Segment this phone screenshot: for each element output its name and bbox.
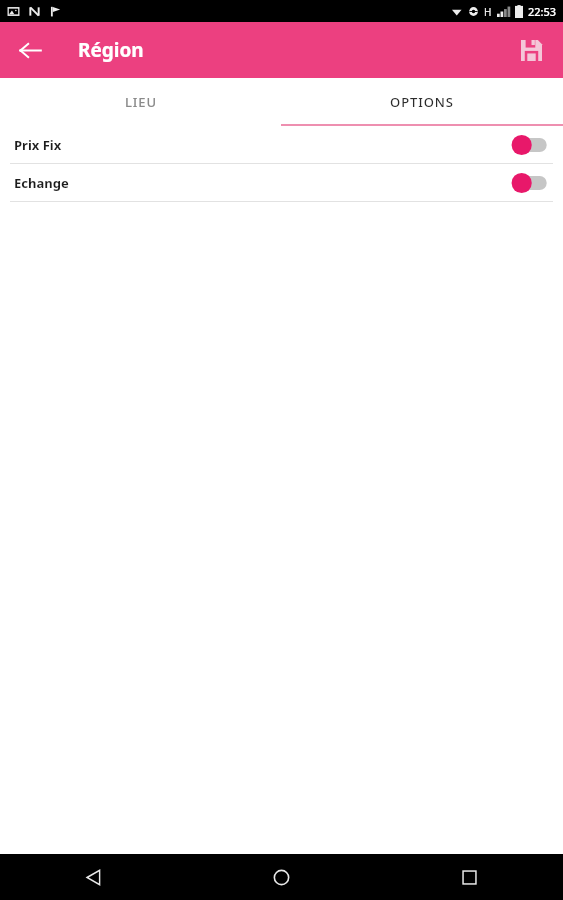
button[interactable]: Back (6, 26, 54, 74)
button[interactable]: LIEU (0, 78, 281, 126)
button[interactable]: Prix Fix (0, 126, 563, 163)
button[interactable]: Home (187, 854, 375, 900)
staticText: Région (78, 37, 144, 63)
staticText: LIEU (125, 93, 157, 111)
staticText: 22:53 (528, 4, 557, 19)
staticText: OPTIONS (390, 93, 454, 111)
staticText: Prix Fix (14, 136, 62, 154)
button[interactable]: Echange (0, 164, 563, 201)
staticText: H (484, 5, 492, 19)
staticText: Echange (14, 174, 69, 192)
button[interactable]: Save (507, 26, 555, 74)
button[interactable] (508, 169, 552, 197)
button[interactable]: OPTIONS (281, 78, 563, 126)
button[interactable]: Back (0, 854, 187, 900)
button[interactable]: Recent apps (375, 854, 563, 900)
button[interactable] (508, 131, 552, 159)
